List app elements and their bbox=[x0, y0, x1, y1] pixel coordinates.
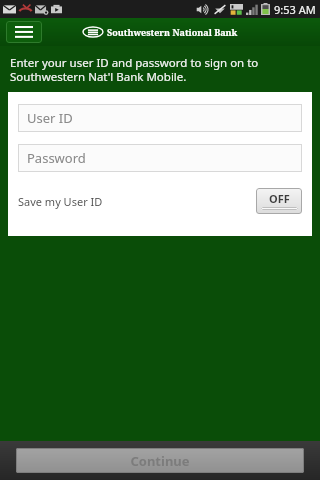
button[interactable]: Continue bbox=[16, 448, 304, 473]
staticText: Password bbox=[27, 149, 86, 167]
button[interactable]: Menu bbox=[6, 21, 42, 43]
staticText: Southwestern National Bank bbox=[107, 26, 238, 38]
staticText: Enter your user ID and password to sign … bbox=[10, 55, 308, 84]
staticText: Continue bbox=[130, 452, 190, 470]
staticText: 9:53 AM bbox=[274, 2, 316, 17]
staticText: OFF bbox=[269, 191, 290, 206]
staticText: Save my User ID bbox=[18, 194, 103, 209]
button[interactable]: Save my User ID toggle, off bbox=[256, 188, 302, 214]
staticText: User ID bbox=[27, 109, 73, 127]
button[interactable]: Password bbox=[18, 144, 302, 172]
button[interactable]: User ID bbox=[18, 104, 302, 132]
